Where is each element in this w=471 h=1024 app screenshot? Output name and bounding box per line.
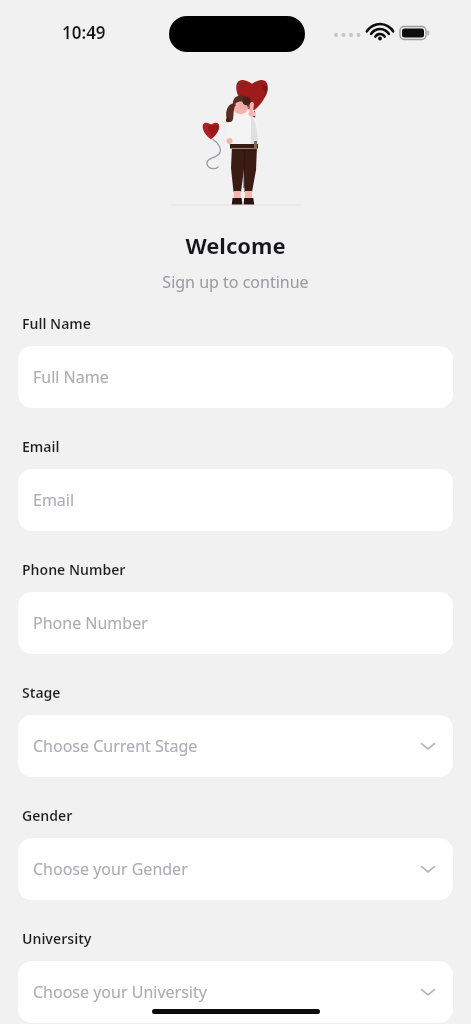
button[interactable]: Choose Current Stage (18, 715, 453, 777)
button[interactable]: Email (18, 469, 453, 531)
staticText: 10:49 (62, 21, 106, 44)
button[interactable]: Full Name (18, 346, 453, 408)
other: Open Gender options (418, 859, 438, 879)
staticText: Phone Number (33, 612, 148, 634)
staticText: Choose Current Stage (33, 735, 198, 757)
staticText: Welcome (0, 230, 471, 260)
staticText: Email (22, 437, 60, 456)
other: Open Stage options (418, 736, 438, 756)
button[interactable]: Choose your University (18, 961, 453, 1023)
staticText: Sign up to continue (0, 271, 471, 293)
staticText: Choose your University (33, 981, 207, 1003)
staticText: Full Name (33, 366, 109, 388)
staticText: Full Name (22, 314, 91, 333)
staticText: Choose your Gender (33, 858, 188, 880)
staticText: Stage (22, 683, 61, 702)
staticText: Email (33, 489, 75, 511)
button[interactable]: Phone Number (18, 592, 453, 654)
other: Open University options (418, 982, 438, 1002)
staticText: Gender (22, 806, 73, 825)
button[interactable]: Choose your Gender (18, 838, 453, 900)
staticText: Phone Number (22, 560, 126, 579)
staticText: University (22, 929, 92, 948)
